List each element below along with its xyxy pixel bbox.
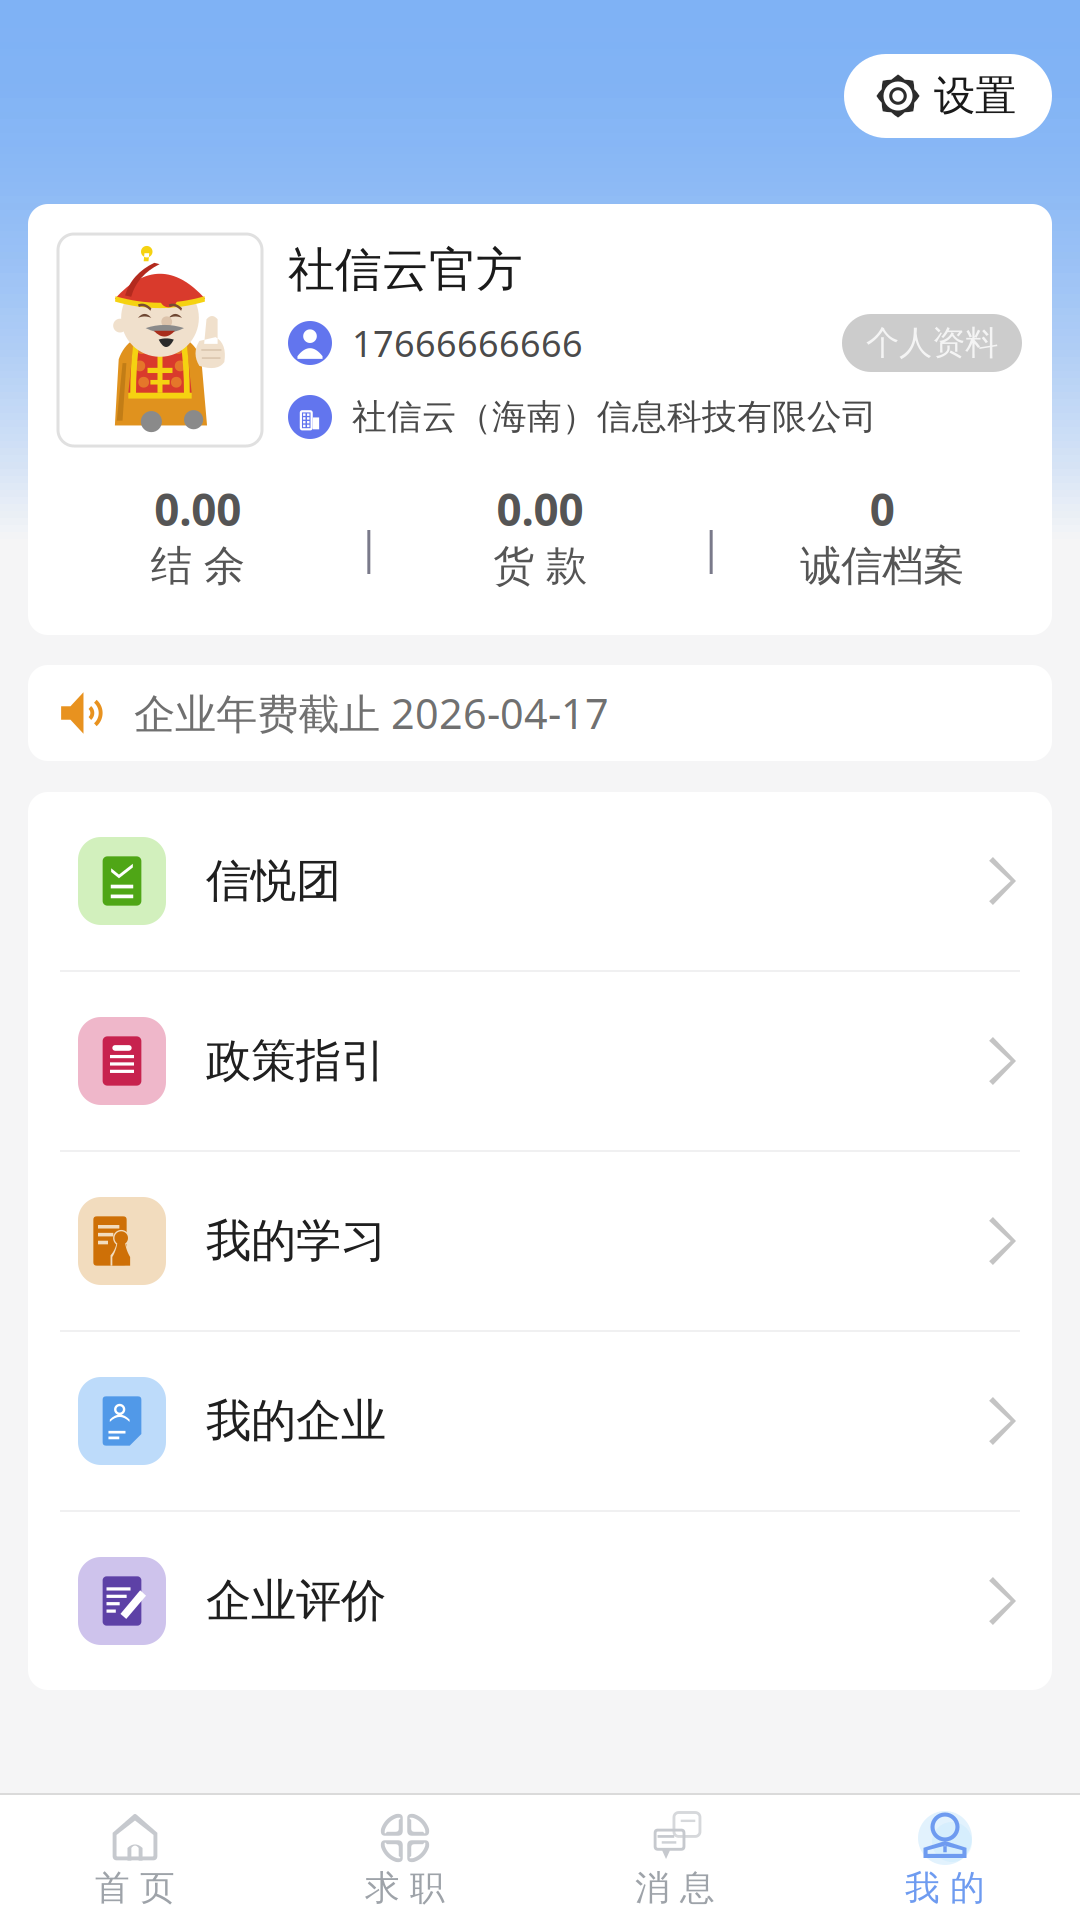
button[interactable]: 设置 bbox=[844, 54, 1052, 138]
staticText: 社信云官方 bbox=[288, 241, 523, 299]
staticText: 我 的 bbox=[905, 1867, 985, 1909]
staticText: 首 页 bbox=[95, 1867, 175, 1909]
button[interactable]: 我的企业 bbox=[28, 1332, 1052, 1510]
staticText: 信悦团 bbox=[206, 853, 341, 909]
button[interactable]: 信悦团 bbox=[28, 792, 1052, 970]
staticText: 个人资料 bbox=[866, 322, 998, 363]
staticText: 17666666666 bbox=[352, 319, 583, 367]
staticText: 企业年费截止 2026-04-17 bbox=[134, 686, 609, 740]
staticText: 消 息 bbox=[635, 1867, 715, 1909]
staticText: 求 职 bbox=[365, 1867, 445, 1909]
button[interactable]: 政策指引 bbox=[28, 972, 1052, 1150]
staticText: 货 款 bbox=[493, 541, 587, 591]
button[interactable]: 我 的 bbox=[810, 1812, 1080, 1912]
staticText: 我的企业 bbox=[206, 1393, 386, 1449]
staticText: 0.00 bbox=[496, 480, 583, 538]
button[interactable]: 企业评价 bbox=[28, 1512, 1052, 1690]
button[interactable]: 我的学习 bbox=[28, 1152, 1052, 1330]
staticText: 设置 bbox=[934, 71, 1016, 121]
button[interactable]: 消 息 bbox=[540, 1812, 810, 1912]
staticText: 0 bbox=[870, 480, 895, 538]
staticText: 0.00 bbox=[154, 480, 241, 538]
staticText: 社信云（海南）信息科技有限公司 bbox=[352, 396, 877, 438]
staticText: 我的学习 bbox=[206, 1213, 386, 1269]
staticText: 结 余 bbox=[151, 541, 245, 591]
button[interactable]: 求 职 bbox=[270, 1812, 540, 1912]
staticText: 诚信档案 bbox=[800, 541, 964, 591]
staticText: 政策指引 bbox=[206, 1033, 386, 1089]
staticText: 企业评价 bbox=[206, 1573, 386, 1629]
button[interactable]: 首 页 bbox=[0, 1812, 270, 1912]
